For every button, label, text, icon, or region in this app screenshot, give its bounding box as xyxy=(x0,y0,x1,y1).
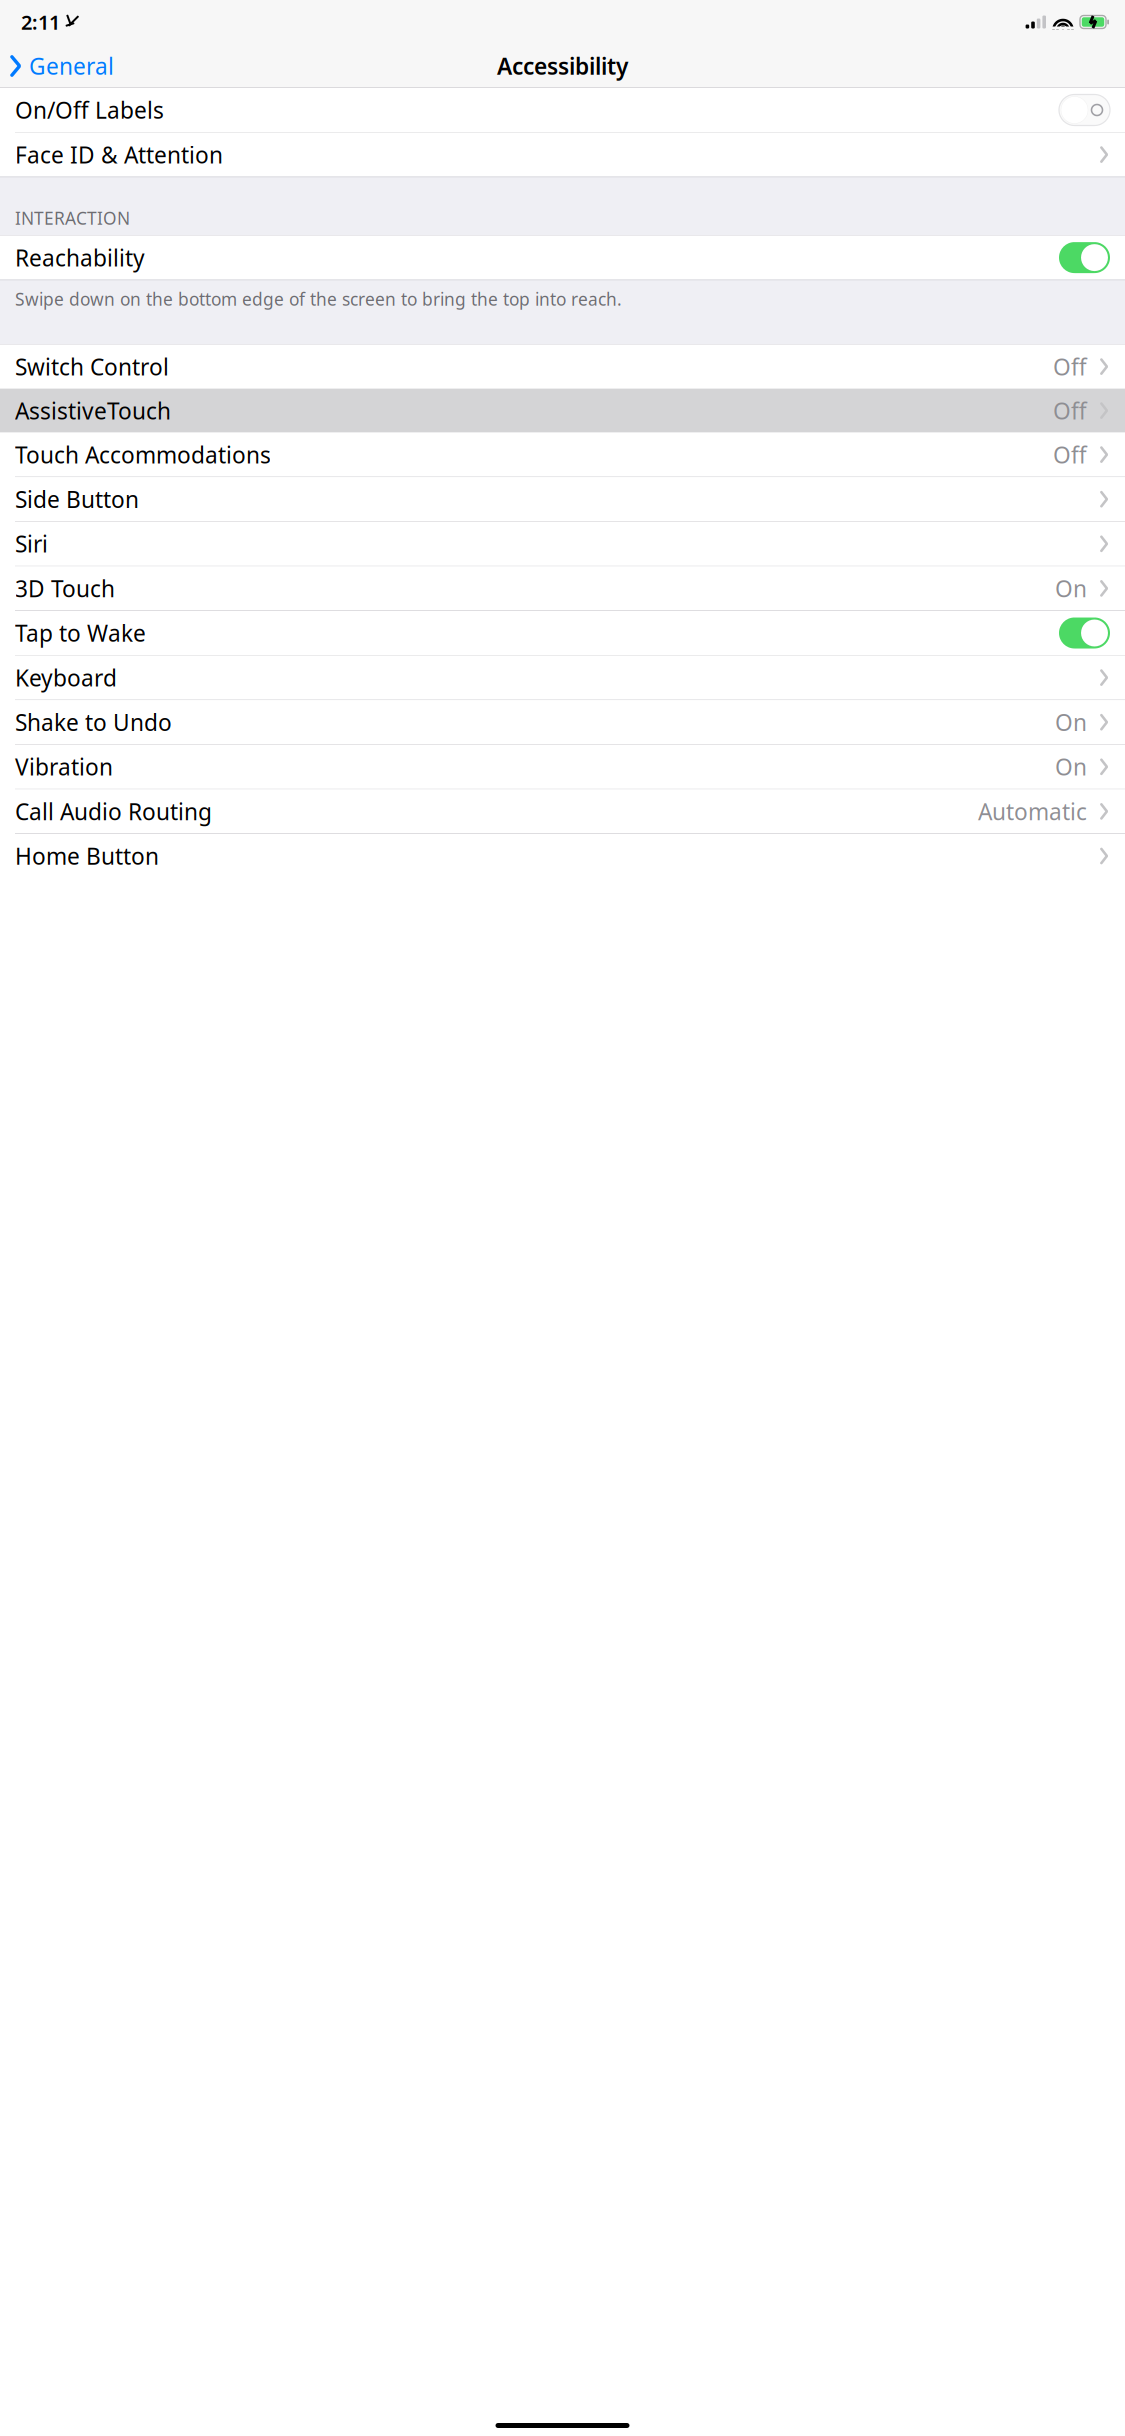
button[interactable]: Reachability xyxy=(0,236,1125,280)
staticText: Accessibility xyxy=(497,51,628,81)
button[interactable]: 3D Touch xyxy=(0,566,1125,610)
button[interactable]: General xyxy=(0,44,124,88)
button[interactable]: Side Button xyxy=(0,477,1125,521)
staticText: 2:11 xyxy=(21,9,60,35)
staticText: Siri xyxy=(15,529,48,559)
staticText: Tap to Wake xyxy=(15,618,146,648)
button[interactable]: Call Audio Routing xyxy=(0,789,1125,833)
button[interactable]: Face ID & Attention xyxy=(0,133,1125,177)
staticText: On xyxy=(1055,573,1087,603)
staticText: Automatic xyxy=(978,796,1087,826)
button[interactable]: Touch Accommodations xyxy=(0,433,1125,477)
staticText: Vibration xyxy=(15,752,113,782)
staticText: On xyxy=(1055,707,1087,737)
staticText: Reachability xyxy=(15,242,145,273)
button[interactable]: Switch Control xyxy=(0,345,1125,389)
staticText: Off xyxy=(1053,351,1087,382)
staticText: AssistiveTouch xyxy=(15,395,171,426)
button[interactable]: Keyboard xyxy=(0,656,1125,700)
staticText: Shake to Undo xyxy=(15,707,172,737)
staticText: On/Off Labels xyxy=(15,95,164,125)
staticText: INTERACTION xyxy=(15,207,130,230)
staticText: Swipe down on the bottom edge of the scr… xyxy=(15,288,622,311)
staticText: Off xyxy=(1053,395,1087,426)
button[interactable]: Shake to Undo xyxy=(0,700,1125,744)
button[interactable]: Vibration xyxy=(0,745,1125,789)
button[interactable]: Home Button xyxy=(0,834,1125,878)
staticText: On xyxy=(1055,752,1087,782)
staticText: Home Button xyxy=(15,841,159,871)
staticText: Call Audio Routing xyxy=(15,796,212,826)
button[interactable]: Siri xyxy=(0,522,1125,566)
staticText: Face ID & Attention xyxy=(15,139,223,170)
staticText: Off xyxy=(1053,439,1087,470)
button[interactable]: On/Off Labels xyxy=(0,88,1125,132)
button[interactable]: AssistiveTouch xyxy=(0,389,1125,433)
button[interactable]: Tap to Wake xyxy=(0,611,1125,655)
staticText: General xyxy=(29,51,114,81)
staticText: Switch Control xyxy=(15,351,169,382)
staticText: Keyboard xyxy=(15,662,117,693)
staticText: 3D Touch xyxy=(15,573,115,603)
staticText: Touch Accommodations xyxy=(15,439,271,470)
staticText: Side Button xyxy=(15,484,139,514)
